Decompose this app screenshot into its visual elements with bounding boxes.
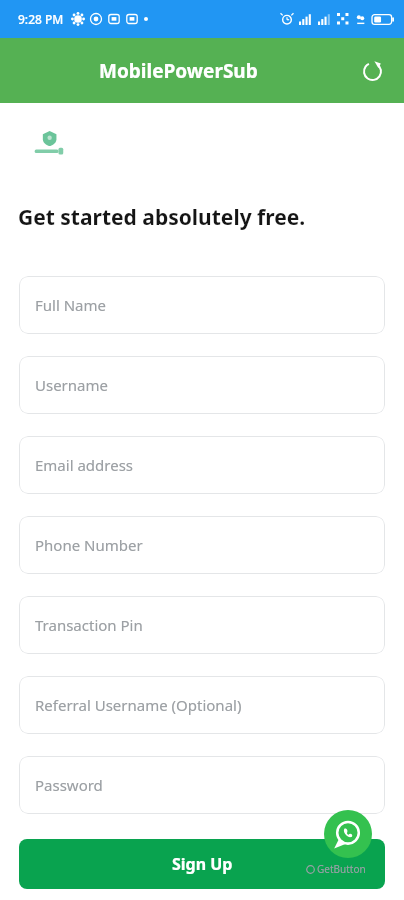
staticText: GetButton	[317, 862, 366, 876]
staticText: Transaction Pin	[35, 615, 143, 635]
button[interactable]: Sign Up	[19, 839, 385, 889]
button[interactable]: Full Name	[19, 276, 385, 334]
staticText: Sign Up	[172, 853, 233, 875]
button[interactable]: Phone Number	[19, 516, 385, 574]
staticText: Full Name	[35, 295, 106, 315]
staticText: 9:28 PM	[18, 11, 64, 27]
button[interactable]: Chat on WhatsApp	[324, 810, 372, 858]
staticText: Get started absolutely free.	[18, 203, 306, 232]
staticText: Password	[35, 775, 103, 795]
button[interactable]: Refresh	[352, 51, 392, 91]
button[interactable]: Username	[19, 356, 385, 414]
staticText: Referral Username (Optional)	[35, 695, 242, 715]
button[interactable]: Transaction Pin	[19, 596, 385, 654]
staticText: MobilePowerSub	[99, 58, 258, 84]
staticText: Phone Number	[35, 535, 143, 555]
staticText: Username	[35, 375, 108, 395]
staticText: Email address	[35, 455, 134, 475]
button[interactable]: Email address	[19, 436, 385, 494]
button[interactable]: Password	[19, 756, 385, 814]
button[interactable]: Referral Username (Optional)	[19, 676, 385, 734]
